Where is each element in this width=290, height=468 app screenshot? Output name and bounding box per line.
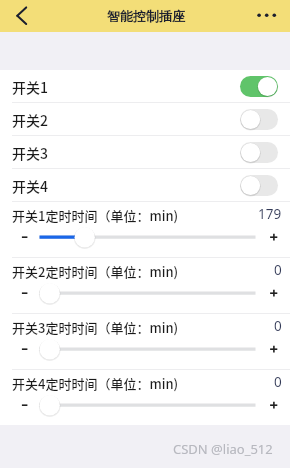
- button[interactable]: More options: [248, 0, 290, 32]
- button[interactable]: 开关2定时时间（单位：min): [0, 258, 290, 313]
- staticText: 智能控制插座: [107, 8, 185, 24]
- staticText: 开关2: [12, 110, 48, 130]
- staticText: 0: [274, 317, 282, 335]
- staticText: 0: [274, 261, 282, 279]
- staticText: 0: [274, 373, 282, 391]
- button[interactable]: 开关1: [0, 70, 290, 102]
- button[interactable]: 开关3定时时间（单位：min): [0, 314, 290, 369]
- button[interactable]: Back: [0, 0, 42, 32]
- staticText: 开关2定时时间（单位：min): [12, 262, 179, 281]
- staticText: 开关3: [12, 143, 48, 163]
- button[interactable]: 开关4定时时间（单位：min): [0, 370, 290, 425]
- button[interactable]: 开关1定时时间（单位：min): [0, 202, 290, 257]
- staticText: 开关4定时时间（单位：min): [12, 374, 179, 393]
- button[interactable]: 开关4: [0, 169, 290, 201]
- staticText: 179: [258, 205, 282, 223]
- button[interactable]: 开关3: [0, 136, 290, 168]
- staticText: 开关3定时时间（单位：min): [12, 318, 179, 337]
- staticText: 开关4: [12, 176, 48, 196]
- staticText: CSDN @liao_512: [173, 440, 273, 458]
- button[interactable]: 开关2: [0, 103, 290, 135]
- staticText: 开关1: [12, 77, 48, 97]
- staticText: 开关1定时时间（单位：min): [12, 206, 179, 225]
